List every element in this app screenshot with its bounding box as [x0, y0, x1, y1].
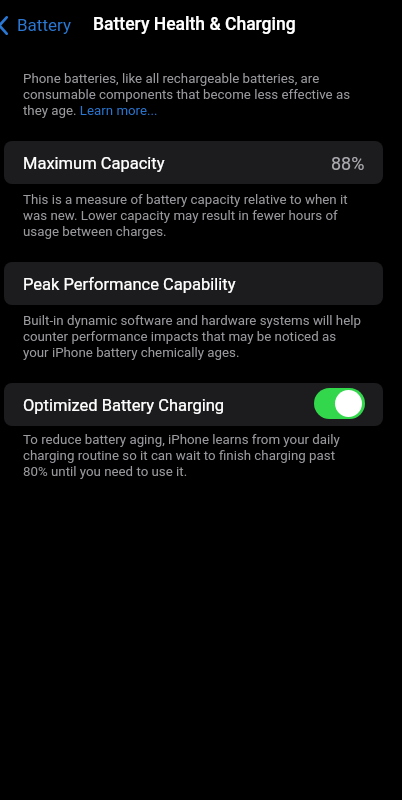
- staticText: Built-in dynamic software and hardware s…: [23, 312, 362, 360]
- button[interactable]: Optimized Battery Charging toggle: [314, 388, 365, 419]
- staticText: Battery Health & Charging: [93, 14, 296, 35]
- staticText: Maximum Capacity: [23, 154, 165, 173]
- staticText: 88%: [331, 153, 365, 174]
- button[interactable]: Learn more: [80, 103, 158, 118]
- button[interactable]: Optimized Battery Charging: [4, 383, 383, 426]
- staticText: Optimized Battery Charging: [23, 396, 225, 415]
- staticText: This is a measure of battery capacity re…: [23, 191, 362, 239]
- staticText: Peak Performance Capability: [23, 275, 236, 294]
- other: Back: [0, 16, 8, 35]
- staticText: To reduce battery aging, iPhone learns f…: [23, 431, 362, 479]
- button[interactable]: Back: [0, 11, 77, 39]
- button[interactable]: Maximum Capacity: [4, 141, 383, 184]
- staticText: Battery: [17, 15, 71, 35]
- button[interactable]: Peak Performance Capability: [4, 262, 383, 305]
- staticText: Phone batteries, like all rechargeable b…: [23, 70, 362, 118]
